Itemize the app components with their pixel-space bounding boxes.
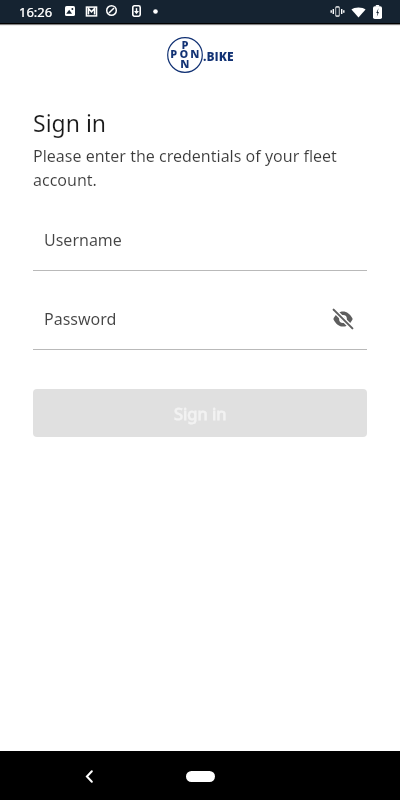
staticText: .BIKE bbox=[203, 48, 234, 64]
staticText: PON bbox=[170, 46, 202, 61]
staticText: Sign in bbox=[174, 402, 227, 424]
staticText: Please enter the credentials of your fle… bbox=[33, 145, 353, 191]
staticText: Sign in bbox=[33, 107, 107, 138]
button[interactable]: Back bbox=[72, 759, 106, 793]
staticText: N bbox=[180, 56, 192, 71]
staticText: P bbox=[181, 37, 191, 52]
button[interactable]: Show password bbox=[326, 302, 360, 336]
staticText: 16:26 bbox=[19, 3, 53, 21]
button[interactable]: Home bbox=[186, 771, 215, 782]
staticText: Password bbox=[44, 308, 117, 330]
button[interactable]: Password bbox=[33, 301, 367, 350]
button[interactable]: Username bbox=[33, 222, 367, 271]
staticText: Username bbox=[44, 229, 122, 251]
